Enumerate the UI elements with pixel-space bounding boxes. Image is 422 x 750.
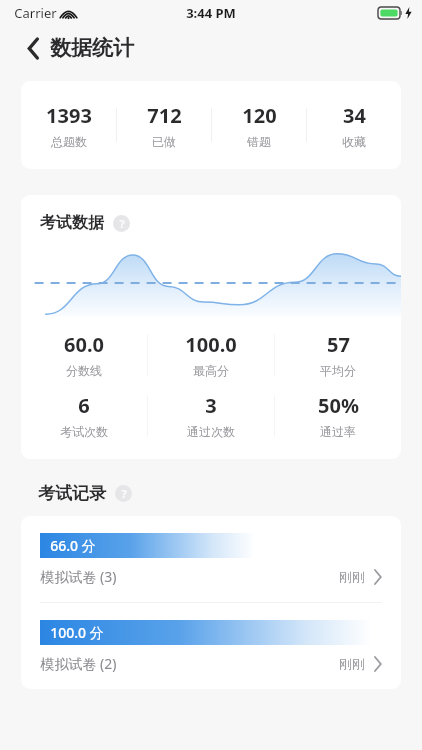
- staticText: 6: [78, 392, 90, 419]
- staticText: 50%: [318, 392, 359, 419]
- staticText: 1393: [46, 102, 92, 129]
- staticText: 分数线: [66, 363, 102, 378]
- staticText: Carrier: [14, 4, 57, 22]
- staticText: 刚刚: [339, 569, 365, 585]
- button[interactable]: 60.0: [21, 331, 147, 378]
- staticText: 考试数据: [40, 213, 104, 233]
- staticText: 100.0: [185, 331, 237, 358]
- staticText: ?: [119, 216, 125, 231]
- staticText: 最高分: [193, 363, 229, 378]
- staticText: 已做: [152, 134, 176, 149]
- staticText: 3:44 PM: [186, 4, 236, 22]
- staticText: 考试记录: [38, 483, 106, 504]
- staticText: 模拟试卷 (2): [40, 654, 117, 673]
- button[interactable]: Help: [115, 485, 132, 502]
- staticText: 57: [327, 331, 350, 358]
- button[interactable]: 1393: [21, 102, 116, 149]
- button[interactable]: 6: [21, 392, 147, 439]
- staticText: 平均分: [320, 363, 356, 378]
- button[interactable]: 120: [212, 102, 306, 149]
- button[interactable]: 66.0 分: [21, 516, 401, 602]
- staticText: 考试次数: [60, 424, 108, 439]
- staticText: 模拟试卷 (3): [40, 567, 117, 586]
- button[interactable]: 57: [275, 331, 401, 378]
- staticText: 66.0 分: [50, 536, 96, 555]
- staticText: 通过次数: [187, 424, 235, 439]
- button[interactable]: 712: [117, 102, 211, 149]
- staticText: 数据统计: [50, 35, 134, 61]
- staticText: 120: [242, 102, 277, 129]
- button[interactable]: 34: [307, 102, 401, 149]
- button[interactable]: 100.0: [148, 331, 274, 378]
- button[interactable]: 100.0 分: [21, 603, 401, 689]
- staticText: 3: [205, 392, 217, 419]
- button[interactable]: 50%: [275, 392, 401, 439]
- staticText: ?: [121, 486, 127, 501]
- button[interactable]: Help: [113, 215, 130, 232]
- staticText: 总题数: [51, 134, 87, 149]
- button[interactable]: 3: [148, 392, 274, 439]
- staticText: 34: [343, 102, 366, 129]
- staticText: 712: [147, 102, 182, 129]
- staticText: 60.0: [64, 331, 104, 358]
- staticText: 通过率: [320, 424, 356, 439]
- button[interactable]: Back: [20, 35, 46, 61]
- staticText: 错题: [247, 134, 271, 149]
- staticText: 刚刚: [339, 656, 365, 672]
- staticText: 收藏: [342, 134, 366, 149]
- staticText: 100.0 分: [50, 623, 104, 642]
